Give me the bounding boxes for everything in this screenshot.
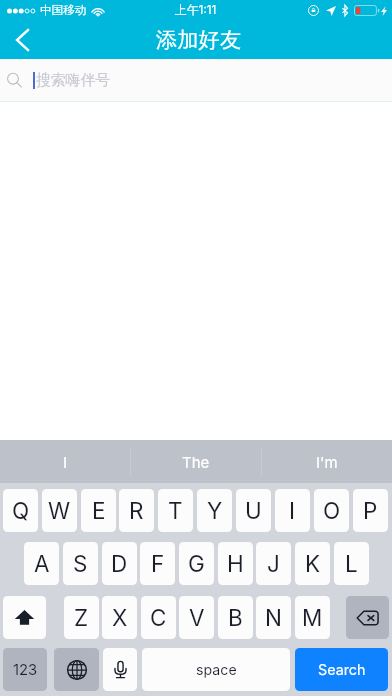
button[interactable]: Z [64,596,99,639]
staticText: R [129,497,144,524]
button[interactable]: Shift [3,596,46,639]
button[interactable]: D [102,542,137,585]
button[interactable]: R [119,489,154,532]
staticText: X [112,604,128,631]
button[interactable]: A [24,542,59,585]
staticText: E [92,497,106,524]
button[interactable]: K [295,542,330,585]
staticText: W [48,497,71,524]
button[interactable]: G [179,542,214,585]
staticText: S [73,550,88,577]
button[interactable]: E [81,489,116,532]
button[interactable]: I'm [262,440,392,483]
button[interactable]: Back [0,20,44,59]
button[interactable]: M [295,596,330,639]
staticText: F [151,550,165,577]
staticText: K [305,550,321,577]
staticText: Q [12,497,30,524]
button[interactable]: 123 [3,648,47,691]
button[interactable]: S [63,542,98,585]
staticText: Search [318,661,366,678]
button[interactable]: J [256,542,291,585]
staticText: V [189,604,205,631]
staticText: 搜索嗨伴号 [36,71,110,90]
staticText: M [302,604,323,631]
staticText: A [34,550,50,577]
staticText: D [111,550,128,577]
staticText: L [345,550,358,577]
button[interactable]: Dictate [103,648,137,691]
button[interactable]: I [275,489,310,532]
button[interactable]: Q [3,489,38,532]
button[interactable]: X [102,596,137,639]
button[interactable]: T [158,489,193,532]
staticText: H [227,550,244,577]
staticText: I'm [316,453,338,471]
staticText: space [196,661,237,678]
staticText: Z [74,604,89,631]
staticText: T [168,497,183,524]
button[interactable]: O [314,489,349,532]
button[interactable]: F [140,542,175,585]
button[interactable]: space [142,648,290,691]
staticText: P [363,497,378,524]
button[interactable]: Backspace [346,596,389,639]
staticText: B [228,604,243,631]
button[interactable]: L [334,542,369,585]
staticText: 添加好友 [156,26,242,53]
staticText: N [265,604,282,631]
button[interactable]: I [0,440,130,483]
staticText: 上午1:11 [175,3,217,18]
staticText: I [63,453,68,471]
button[interactable]: V [179,596,214,639]
staticText: I [289,497,296,524]
button[interactable]: U [236,489,271,532]
button[interactable]: N [256,596,291,639]
button[interactable]: W [42,489,77,532]
staticText: Y [207,497,223,524]
button[interactable]: H [218,542,253,585]
button[interactable]: Search [295,648,388,691]
staticText: 123 [13,661,38,679]
staticText: C [150,604,167,631]
staticText: The [182,453,210,471]
staticText: J [267,550,280,577]
button[interactable]: C [141,596,176,639]
button[interactable]: P [353,489,388,532]
button[interactable]: Switch keyboard [54,648,99,691]
staticText: O [323,497,341,524]
button[interactable]: The [131,440,261,483]
staticText: G [188,550,205,577]
staticText: U [245,497,262,524]
button[interactable]: B [218,596,253,639]
button[interactable]: Y [197,489,232,532]
staticText: 中国移动 [40,3,87,18]
